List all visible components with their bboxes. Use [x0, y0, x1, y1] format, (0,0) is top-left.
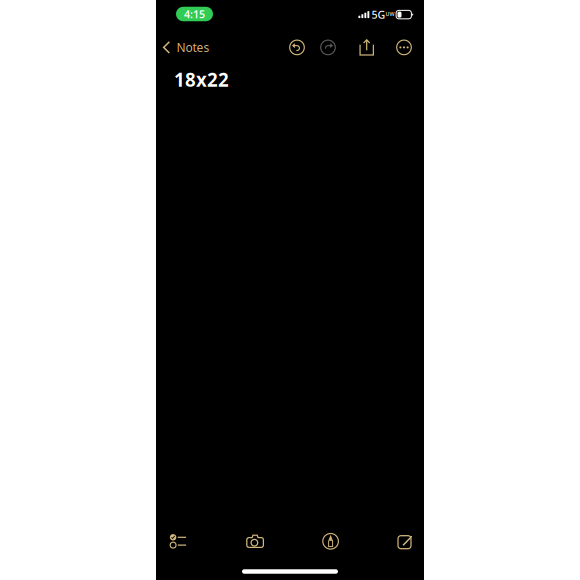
- button[interactable]: Notes: [156, 34, 216, 60]
- staticText: 18x22: [174, 67, 229, 92]
- button[interactable]: Share: [353, 34, 381, 60]
- button[interactable]: Insert photo: [233, 521, 277, 561]
- staticText: 4:15: [184, 7, 205, 21]
- button[interactable]: Checklist: [156, 521, 200, 561]
- button[interactable]: More options: [390, 34, 418, 60]
- staticText: 5G: [371, 7, 385, 22]
- button[interactable]: Markup: [309, 521, 353, 561]
- button[interactable]: Redo: [314, 34, 342, 60]
- button[interactable]: New note: [384, 521, 428, 561]
- staticText: UW: [385, 10, 394, 17]
- staticText: Notes: [177, 39, 210, 55]
- button[interactable]: Undo: [283, 34, 311, 60]
